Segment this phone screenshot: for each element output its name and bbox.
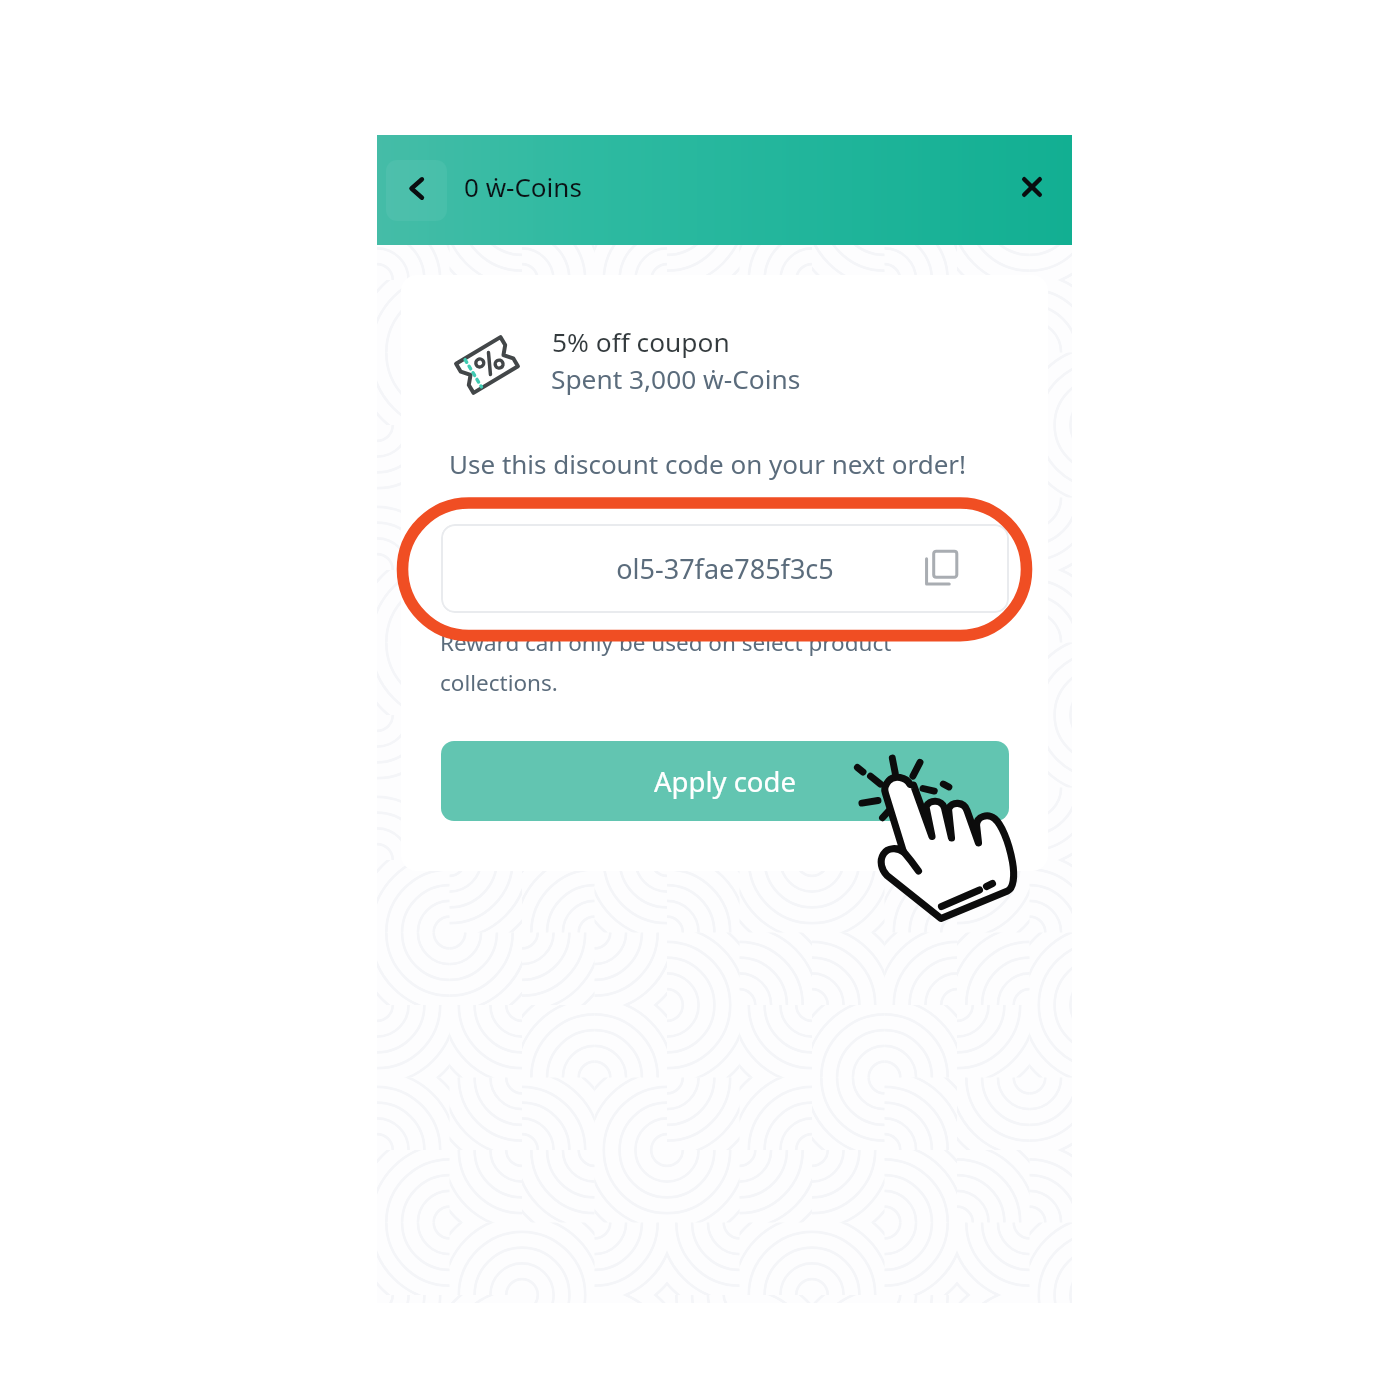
button[interactable]: Apply code [441, 741, 1009, 821]
staticText: Use this discount code on your next orde… [449, 446, 967, 481]
staticText: Spent 3,000 ẇ-Coins [551, 361, 801, 397]
staticText: ol5-37fae785f3c5 [441, 550, 1009, 587]
staticText: Apply code [654, 763, 796, 800]
button[interactable]: Back [386, 160, 447, 221]
button[interactable]: ol5-37fae785f3c5 [441, 524, 1009, 613]
button[interactable]: Close [1007, 165, 1057, 215]
staticText: 0 ẇ-Coins [464, 169, 582, 204]
staticText: Reward can only be used on select produc… [440, 627, 898, 698]
button[interactable]: Copy code [919, 547, 961, 589]
staticText: 5% off coupon [552, 324, 730, 360]
